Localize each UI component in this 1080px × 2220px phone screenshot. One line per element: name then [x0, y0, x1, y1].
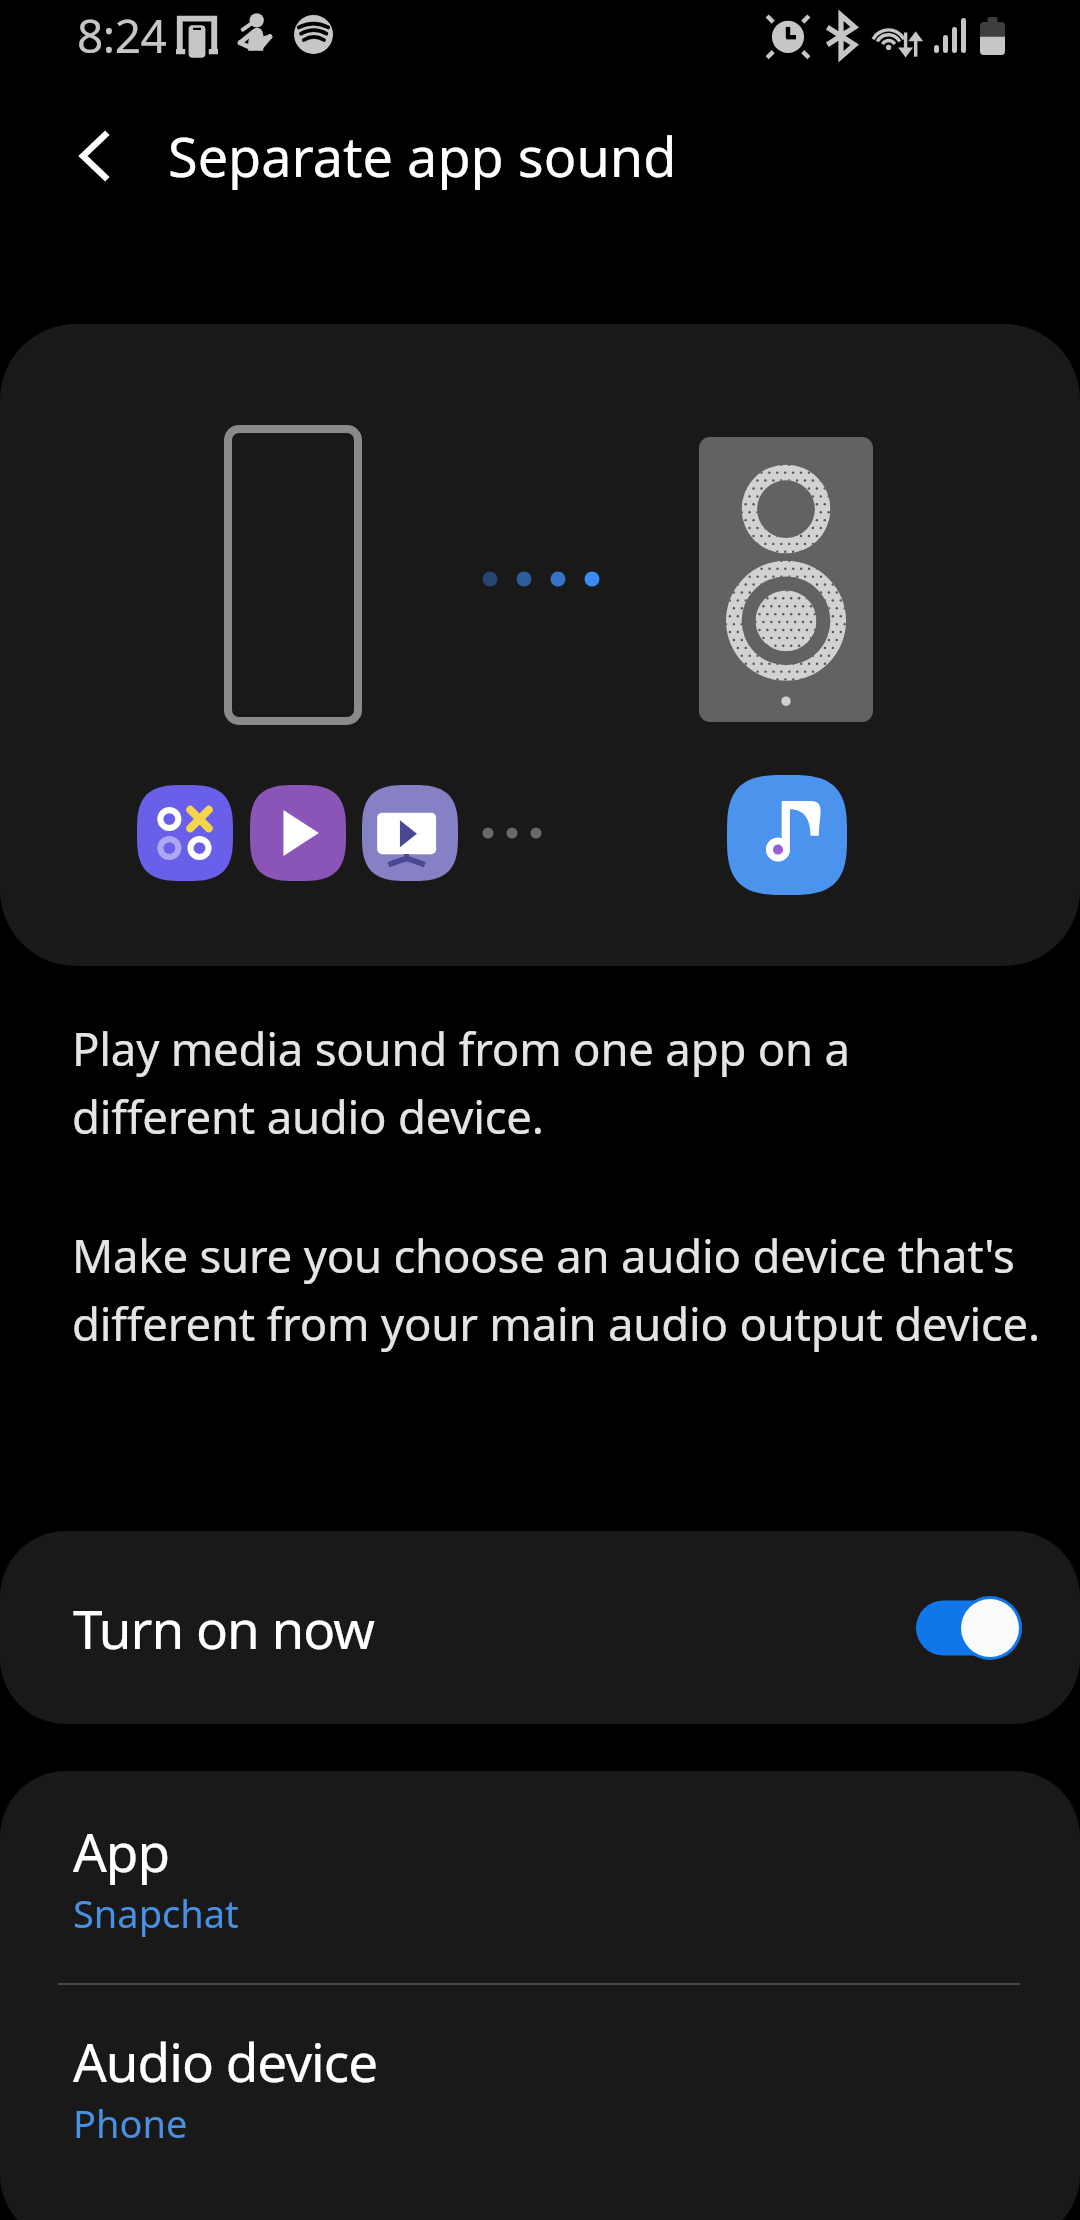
staticText: Audio device: [73, 2025, 378, 2097]
staticText: Turn on now: [73, 1592, 375, 1664]
staticText: 8:24: [77, 4, 167, 67]
staticText: Phone: [73, 2097, 188, 2149]
staticText: App: [73, 1815, 170, 1887]
button[interactable]: Audio device: [0, 1981, 1080, 2190]
staticText: Play media sound from one app on a diffe…: [72, 1017, 850, 1147]
button[interactable]: App: [0, 1771, 1080, 1980]
staticText: Snapchat: [73, 1887, 239, 1939]
button[interactable]: Navigate up: [56, 118, 132, 194]
staticText: Separate app sound: [168, 119, 677, 193]
staticText: Make sure you choose an audio device tha…: [72, 1224, 1041, 1354]
button[interactable]: Turn on now: [0, 1531, 1080, 1724]
button[interactable]: Turn on now switch: [916, 1595, 1022, 1661]
